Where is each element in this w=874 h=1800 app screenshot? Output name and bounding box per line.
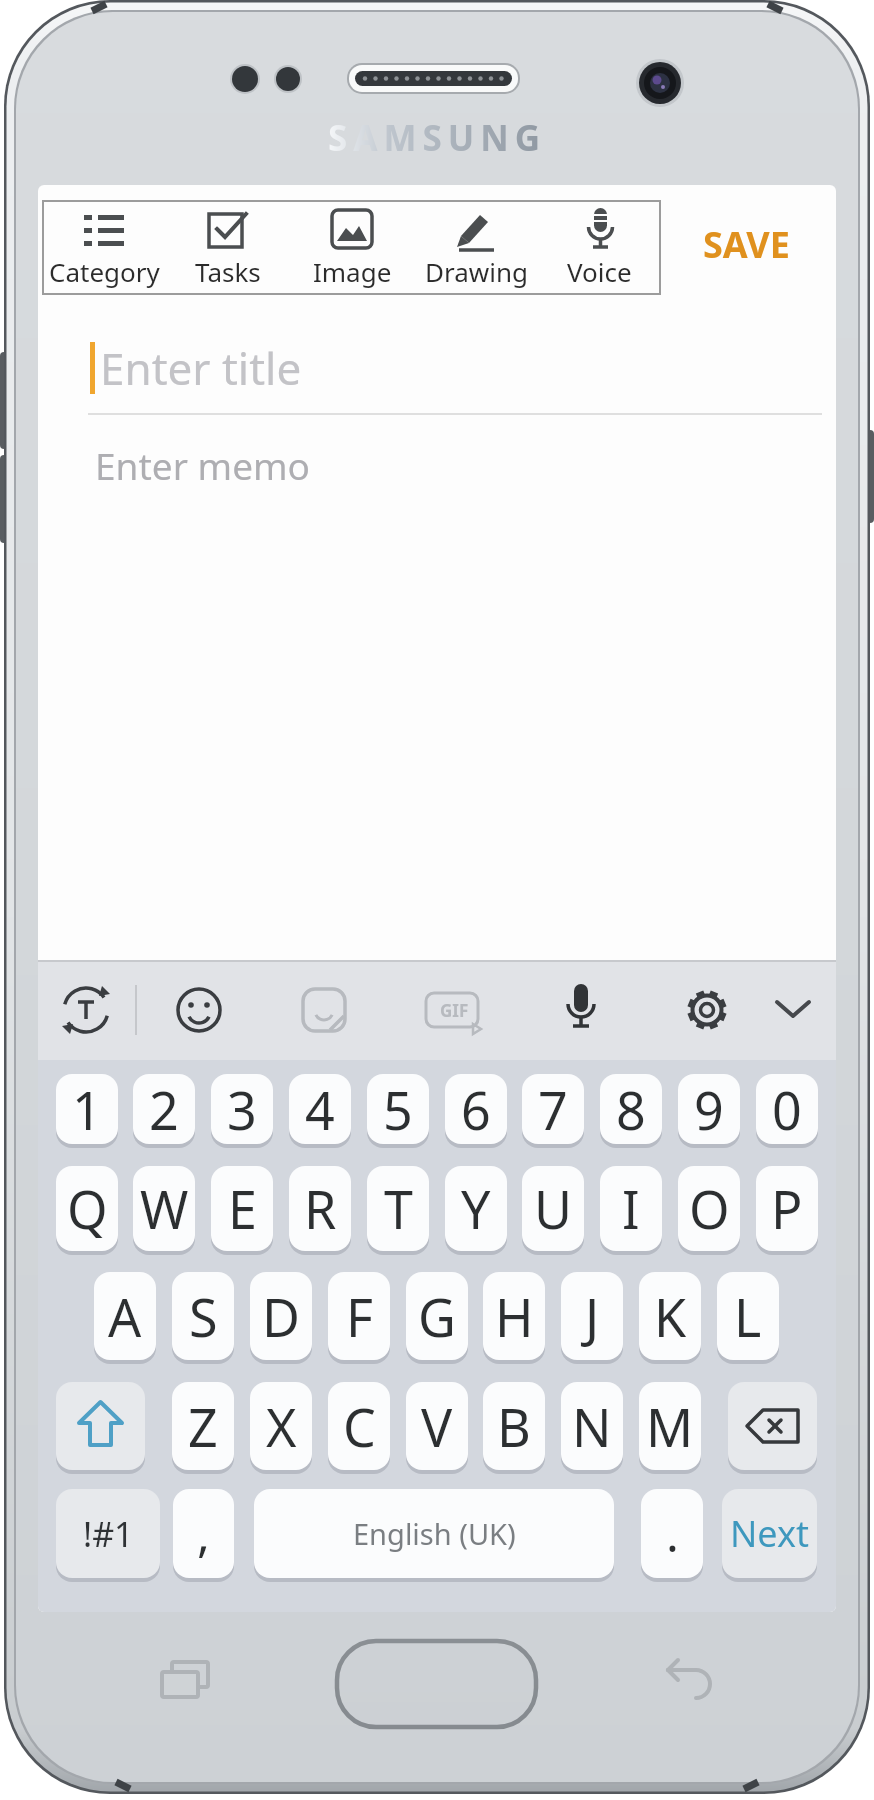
button[interactable]: T bbox=[367, 1166, 429, 1251]
staticText: Enter memo bbox=[95, 440, 311, 490]
button[interactable]: 8 bbox=[600, 1074, 662, 1144]
button[interactable] bbox=[296, 982, 352, 1038]
staticText: P bbox=[771, 1173, 803, 1244]
button[interactable] bbox=[679, 982, 735, 1038]
button[interactable]: 2 bbox=[133, 1074, 195, 1144]
button[interactable]: F bbox=[328, 1272, 390, 1360]
staticText: N bbox=[572, 1391, 612, 1462]
button[interactable] bbox=[765, 980, 821, 1036]
button[interactable]: Y bbox=[445, 1166, 507, 1251]
staticText: 4 bbox=[305, 1074, 335, 1144]
button[interactable]: 7 bbox=[522, 1074, 584, 1144]
staticText: 6 bbox=[461, 1074, 491, 1144]
staticText: Category bbox=[49, 254, 160, 289]
button[interactable]: 6 bbox=[445, 1074, 507, 1144]
staticText: M bbox=[646, 1391, 694, 1462]
button[interactable]: L bbox=[717, 1272, 779, 1360]
button[interactable]: SAVE bbox=[690, 208, 802, 280]
staticText: Drawing bbox=[425, 254, 528, 289]
staticText: 0 bbox=[772, 1074, 802, 1144]
button[interactable]: N bbox=[561, 1382, 623, 1470]
button[interactable]: . bbox=[641, 1489, 703, 1578]
staticText: Q bbox=[67, 1173, 108, 1244]
button[interactable]: 5 bbox=[367, 1074, 429, 1144]
staticText: , bbox=[197, 1501, 210, 1566]
staticText: L bbox=[734, 1281, 762, 1352]
button[interactable]: Tasks bbox=[166, 200, 290, 295]
staticText: I bbox=[622, 1173, 640, 1244]
button[interactable] bbox=[171, 982, 227, 1038]
button[interactable] bbox=[553, 980, 609, 1036]
button[interactable]: J bbox=[561, 1272, 623, 1360]
staticText: X bbox=[266, 1391, 297, 1462]
button[interactable]: I bbox=[600, 1166, 662, 1251]
staticText: 5 bbox=[383, 1074, 413, 1144]
staticText: W bbox=[140, 1173, 189, 1244]
button[interactable]: K bbox=[639, 1272, 701, 1360]
staticText: 8 bbox=[616, 1074, 646, 1144]
staticText: A bbox=[108, 1281, 142, 1352]
button[interactable]: Z bbox=[172, 1382, 234, 1470]
staticText: K bbox=[654, 1281, 687, 1352]
button[interactable] bbox=[58, 982, 114, 1038]
staticText: V bbox=[421, 1391, 453, 1462]
staticText: B bbox=[497, 1391, 531, 1462]
staticText: Y bbox=[461, 1173, 491, 1244]
staticText: D bbox=[262, 1281, 300, 1352]
button[interactable]: Q bbox=[56, 1166, 118, 1251]
staticText: GIF bbox=[440, 999, 469, 1022]
button[interactable]: 9 bbox=[678, 1074, 740, 1144]
button[interactable]: V bbox=[406, 1382, 468, 1470]
staticText: H bbox=[495, 1281, 534, 1352]
button[interactable]: H bbox=[483, 1272, 545, 1360]
button[interactable]: X bbox=[250, 1382, 312, 1470]
button[interactable]: 0 bbox=[756, 1074, 818, 1144]
button[interactable]: M bbox=[639, 1382, 701, 1470]
staticText: R bbox=[304, 1173, 337, 1244]
button[interactable]: Next bbox=[722, 1489, 817, 1578]
staticText: 3 bbox=[227, 1074, 257, 1144]
staticText: Next bbox=[730, 1509, 809, 1558]
staticText: Voice bbox=[567, 254, 632, 289]
button[interactable]: S bbox=[172, 1272, 234, 1360]
staticText: U bbox=[534, 1173, 573, 1244]
button[interactable]: Category bbox=[42, 200, 166, 295]
button[interactable]: W bbox=[133, 1166, 195, 1251]
staticText: Tasks bbox=[195, 254, 261, 289]
button[interactable]: GIF bbox=[423, 982, 485, 1038]
staticText: G bbox=[418, 1281, 456, 1352]
staticText: !#1 bbox=[83, 1511, 134, 1557]
staticText: E bbox=[228, 1173, 257, 1244]
button[interactable]: 1 bbox=[56, 1074, 118, 1144]
button[interactable]: E bbox=[211, 1166, 273, 1251]
button[interactable]: Enter title bbox=[100, 338, 500, 398]
button[interactable] bbox=[56, 1382, 145, 1470]
button[interactable]: Drawing bbox=[414, 200, 538, 295]
button[interactable]: English (UK) bbox=[254, 1489, 614, 1578]
staticText: Image bbox=[313, 254, 392, 289]
button[interactable]: 3 bbox=[211, 1074, 273, 1144]
button[interactable]: Image bbox=[290, 200, 414, 295]
staticText: SAVE bbox=[703, 220, 790, 269]
staticText: Enter title bbox=[100, 338, 302, 398]
button[interactable]: A bbox=[94, 1272, 156, 1360]
button[interactable]: 4 bbox=[289, 1074, 351, 1144]
button[interactable]: Enter memo bbox=[95, 437, 495, 493]
button[interactable]: P bbox=[756, 1166, 818, 1251]
staticText: . bbox=[666, 1501, 679, 1566]
button[interactable]: B bbox=[483, 1382, 545, 1470]
button[interactable]: R bbox=[289, 1166, 351, 1251]
button[interactable]: O bbox=[678, 1166, 740, 1251]
button[interactable]: C bbox=[328, 1382, 390, 1470]
button[interactable] bbox=[728, 1382, 817, 1470]
button[interactable]: G bbox=[406, 1272, 468, 1360]
staticText: Z bbox=[188, 1391, 218, 1462]
staticText: 2 bbox=[149, 1074, 179, 1144]
button[interactable]: !#1 bbox=[56, 1489, 160, 1578]
button[interactable]: D bbox=[250, 1272, 312, 1360]
staticText: T bbox=[384, 1173, 413, 1244]
staticText: F bbox=[346, 1281, 373, 1352]
button[interactable]: U bbox=[522, 1166, 584, 1251]
button[interactable]: Voice bbox=[538, 200, 661, 295]
button[interactable]: , bbox=[173, 1489, 234, 1578]
